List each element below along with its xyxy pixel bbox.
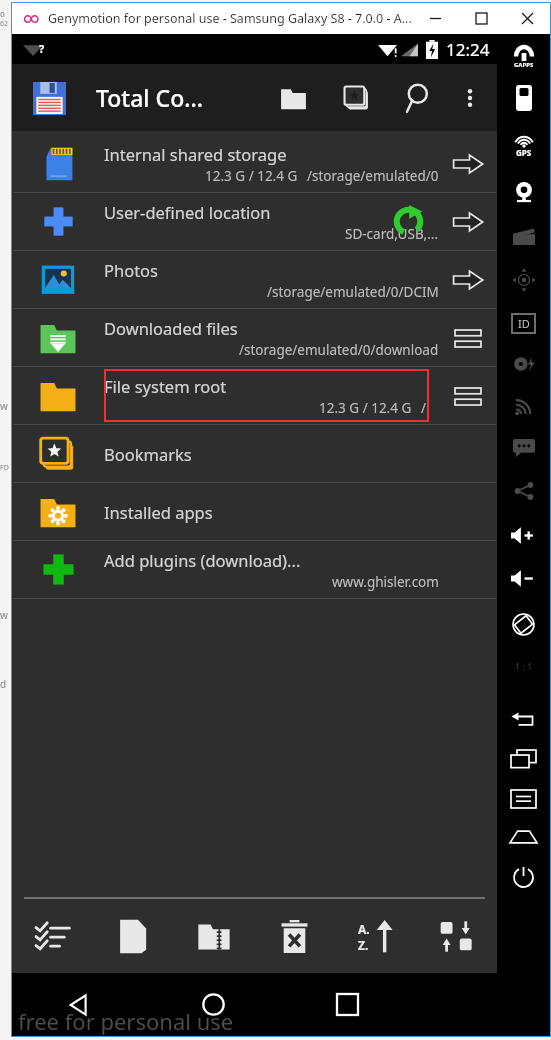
button[interactable]: Minimize [412, 3, 458, 34]
button[interactable]: Volume up [497, 527, 550, 544]
staticText: File system root [104, 375, 227, 397]
button[interactable]: Move [416, 899, 497, 973]
button[interactable]: Scale one to one [497, 660, 550, 672]
staticText: Add plugins (download)... [104, 549, 301, 571]
button[interactable]: File system root [12, 367, 497, 424]
button[interactable]: Rotate [497, 613, 550, 636]
staticText: 1 : 1 [515, 660, 533, 672]
staticText: User-defined location [104, 201, 271, 223]
staticText: free for personal use [18, 1006, 234, 1036]
button[interactable]: Search [395, 74, 443, 122]
staticText: Total Co... [96, 82, 203, 113]
button[interactable]: Open folder [269, 74, 317, 122]
staticText: w [0, 399, 8, 413]
button[interactable]: Home [497, 830, 550, 844]
button[interactable]: Total Commander [30, 79, 68, 117]
button[interactable]: Maximize [458, 3, 504, 34]
staticText: 62 [0, 19, 9, 29]
button[interactable]: Open in other panel [444, 140, 492, 188]
staticText: 12:24 [446, 38, 490, 61]
button[interactable]: Add plugins (download)... [12, 541, 497, 598]
staticText: ID [518, 316, 530, 331]
staticText: SD-card,USB,... [345, 225, 439, 243]
button[interactable]: Photos [12, 251, 497, 308]
button[interactable]: Bookmarks [12, 425, 497, 482]
button[interactable]: Home [146, 973, 280, 1036]
staticText: /storage/emulated/0/DCIM [267, 283, 439, 301]
staticText: / [421, 399, 427, 417]
staticText: 12.3 G / 12.4 G [319, 399, 412, 417]
button[interactable]: Recent apps [280, 973, 414, 1036]
staticText: Downloaded files [104, 317, 238, 339]
button[interactable]: Delete [254, 899, 335, 973]
staticText: 12.3 G / 12.4 G [205, 167, 298, 185]
button[interactable]: Recent apps [497, 750, 550, 768]
staticText: o [0, 8, 5, 19]
staticText: Genymotion for personal use - Samsung Ga… [48, 10, 412, 27]
button[interactable]: Internal shared storage [12, 135, 497, 192]
staticText: /storage/emulated/0 [307, 167, 439, 185]
button[interactable]: SMS [497, 439, 550, 457]
staticText: w [0, 608, 8, 622]
button[interactable]: Back [497, 712, 550, 728]
button[interactable]: Power [497, 866, 550, 889]
button[interactable]: Camera [497, 181, 550, 203]
button[interactable]: Screen recorder [497, 227, 550, 245]
staticText: Internal shared storage [104, 143, 287, 165]
button[interactable]: Back [12, 973, 146, 1036]
button[interactable]: Panel menu [444, 372, 492, 420]
button[interactable]: Select files [12, 899, 92, 973]
staticText: GPS [516, 147, 532, 158]
button[interactable]: Bookmarks [333, 74, 381, 122]
staticText: A. [358, 921, 370, 937]
button[interactable]: Downloaded files [12, 309, 497, 366]
button[interactable]: Open in other panel [444, 256, 492, 304]
button[interactable]: User-defined location [12, 193, 497, 250]
staticText: Photos [104, 259, 159, 281]
staticText: FD [0, 463, 9, 473]
staticText: d [0, 677, 7, 691]
button[interactable]: Sort [335, 899, 416, 973]
button[interactable]: Battery [497, 85, 550, 111]
button[interactable]: Network [497, 396, 550, 416]
button[interactable]: Close [504, 3, 550, 34]
staticText: Installed apps [104, 501, 213, 523]
button[interactable]: Baseband [497, 356, 550, 372]
button[interactable]: Installed apps [12, 483, 497, 540]
staticText: /storage/emulated/0/download [239, 341, 439, 359]
staticText: Bookmarks [104, 443, 192, 465]
button[interactable]: Compress [173, 899, 254, 973]
button[interactable]: Panel menu [444, 314, 492, 362]
button[interactable]: More options [449, 77, 491, 119]
button[interactable]: New file [92, 899, 173, 973]
button[interactable]: Open in other panel [444, 198, 492, 246]
button[interactable]: Volume down [497, 570, 550, 587]
button[interactable]: Identifiers [497, 313, 550, 334]
button[interactable]: Share [497, 481, 550, 501]
button[interactable]: GAPPS [497, 45, 550, 69]
staticText: Z. [358, 937, 369, 953]
button[interactable]: D-Pad [497, 269, 550, 291]
button[interactable]: GPS [497, 135, 550, 158]
button[interactable]: Menu [497, 790, 550, 808]
staticText: ? [39, 41, 45, 56]
staticText: www.ghisler.com [332, 573, 439, 591]
staticText: GAPPS [514, 61, 534, 69]
